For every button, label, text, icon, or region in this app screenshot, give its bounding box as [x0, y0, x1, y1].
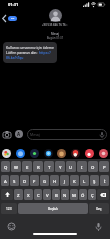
staticText: J — [64, 178, 66, 184]
button[interactable]: S — [10, 175, 19, 186]
staticText: S — [13, 178, 16, 184]
staticText: A — [17, 131, 21, 137]
button[interactable]: O — [88, 161, 98, 172]
staticText: V — [46, 192, 49, 198]
staticText: Mesaj — [30, 132, 40, 137]
button[interactable] — [96, 223, 101, 231]
staticText: O — [91, 164, 95, 170]
staticText: G — [43, 178, 47, 184]
button[interactable]: 123 — [1, 203, 17, 214]
button[interactable]: Mesaj — [30, 129, 104, 140]
button[interactable]: Ş — [90, 175, 99, 186]
button[interactable]: U — [66, 161, 76, 172]
staticText: Geç — [96, 207, 102, 211]
staticText: Boşluk — [48, 207, 59, 211]
button[interactable]: X — [24, 189, 33, 200]
staticText: T — [48, 164, 51, 170]
staticText: Bugün 01:31 — [0, 36, 110, 40]
button[interactable]: F — [30, 175, 39, 186]
staticText: N — [63, 192, 67, 198]
button[interactable] — [1, 189, 13, 200]
button[interactable]: Z — [14, 189, 23, 200]
button[interactable]: H — [50, 175, 59, 186]
button[interactable]: R — [33, 161, 43, 172]
button[interactable]: B — [52, 189, 60, 200]
button[interactable] — [16, 149, 25, 158]
button[interactable]: G — [40, 175, 49, 186]
staticText: A — [4, 178, 7, 184]
staticText: C — [37, 192, 40, 198]
staticText: 01:31 — [8, 2, 19, 7]
button[interactable]: T — [44, 161, 54, 172]
button[interactable] — [99, 149, 108, 158]
button[interactable]: J — [60, 175, 69, 186]
staticText: 123 — [6, 207, 12, 211]
staticText: İ — [104, 178, 106, 184]
button[interactable]: Ö — [79, 189, 87, 200]
staticText: K — [73, 178, 76, 184]
button[interactable]: +90 535 846 76 76 › — [42, 23, 68, 27]
staticText: Ç — [91, 192, 94, 198]
staticText: F — [33, 178, 36, 184]
button[interactable]: L — [80, 175, 89, 186]
button[interactable]: P — [99, 161, 109, 172]
button[interactable]: N — [61, 189, 69, 200]
button[interactable]: İ — [100, 175, 109, 186]
button[interactable]: Y — [55, 161, 65, 172]
staticText: D — [23, 178, 27, 184]
staticText: W — [14, 164, 18, 170]
staticText: I — [81, 164, 83, 170]
button[interactable]: A — [15, 130, 23, 138]
staticText: Lütfen paranızı alın: — [6, 50, 39, 55]
button[interactable] — [85, 149, 94, 158]
button[interactable] — [57, 149, 66, 158]
staticText: U — [69, 164, 73, 170]
staticText: P — [103, 164, 106, 170]
button[interactable]: Boşluk — [18, 203, 88, 214]
staticText: L — [83, 178, 86, 184]
staticText: R — [37, 164, 40, 170]
button[interactable]: K — [70, 175, 79, 186]
button[interactable]: C — [34, 189, 42, 200]
staticText: https://50 — [39, 50, 54, 55]
staticText: Z — [17, 192, 20, 198]
staticText: Ö — [81, 192, 85, 198]
button[interactable] — [49, 9, 62, 22]
staticText: Y — [59, 164, 62, 170]
button[interactable]: Geç — [89, 203, 109, 214]
staticText: Ş — [93, 178, 96, 184]
button[interactable]: 86.kz/hTqu — [6, 55, 24, 60]
button[interactable]: Q — [1, 161, 10, 172]
button[interactable] — [8, 223, 15, 230]
button[interactable]: Ç — [88, 189, 96, 200]
button[interactable]: I — [77, 161, 87, 172]
staticText: 99+ — [11, 17, 15, 20]
button[interactable] — [97, 189, 109, 200]
staticText: M — [72, 192, 76, 198]
button[interactable] — [71, 149, 80, 158]
button[interactable] — [30, 149, 39, 158]
button[interactable] — [2, 149, 11, 158]
staticText: H — [53, 178, 57, 184]
staticText: Mesaj — [0, 32, 110, 36]
button[interactable] — [44, 149, 53, 158]
button[interactable]: A — [1, 175, 9, 186]
button[interactable]: M — [70, 189, 78, 200]
button[interactable]: W — [11, 161, 21, 172]
button[interactable]: E — [22, 161, 32, 172]
button[interactable]: 99+ — [2, 15, 17, 22]
button[interactable]: V — [43, 189, 51, 200]
button[interactable]: D — [20, 175, 29, 186]
staticText: X — [27, 192, 30, 198]
staticText: Q — [4, 164, 8, 170]
staticText: B — [55, 192, 58, 198]
staticText: E — [26, 164, 29, 170]
button[interactable] — [3, 131, 11, 138]
staticText: Kullanıcı unvanınız için ödeme yapıldı. — [6, 45, 54, 50]
